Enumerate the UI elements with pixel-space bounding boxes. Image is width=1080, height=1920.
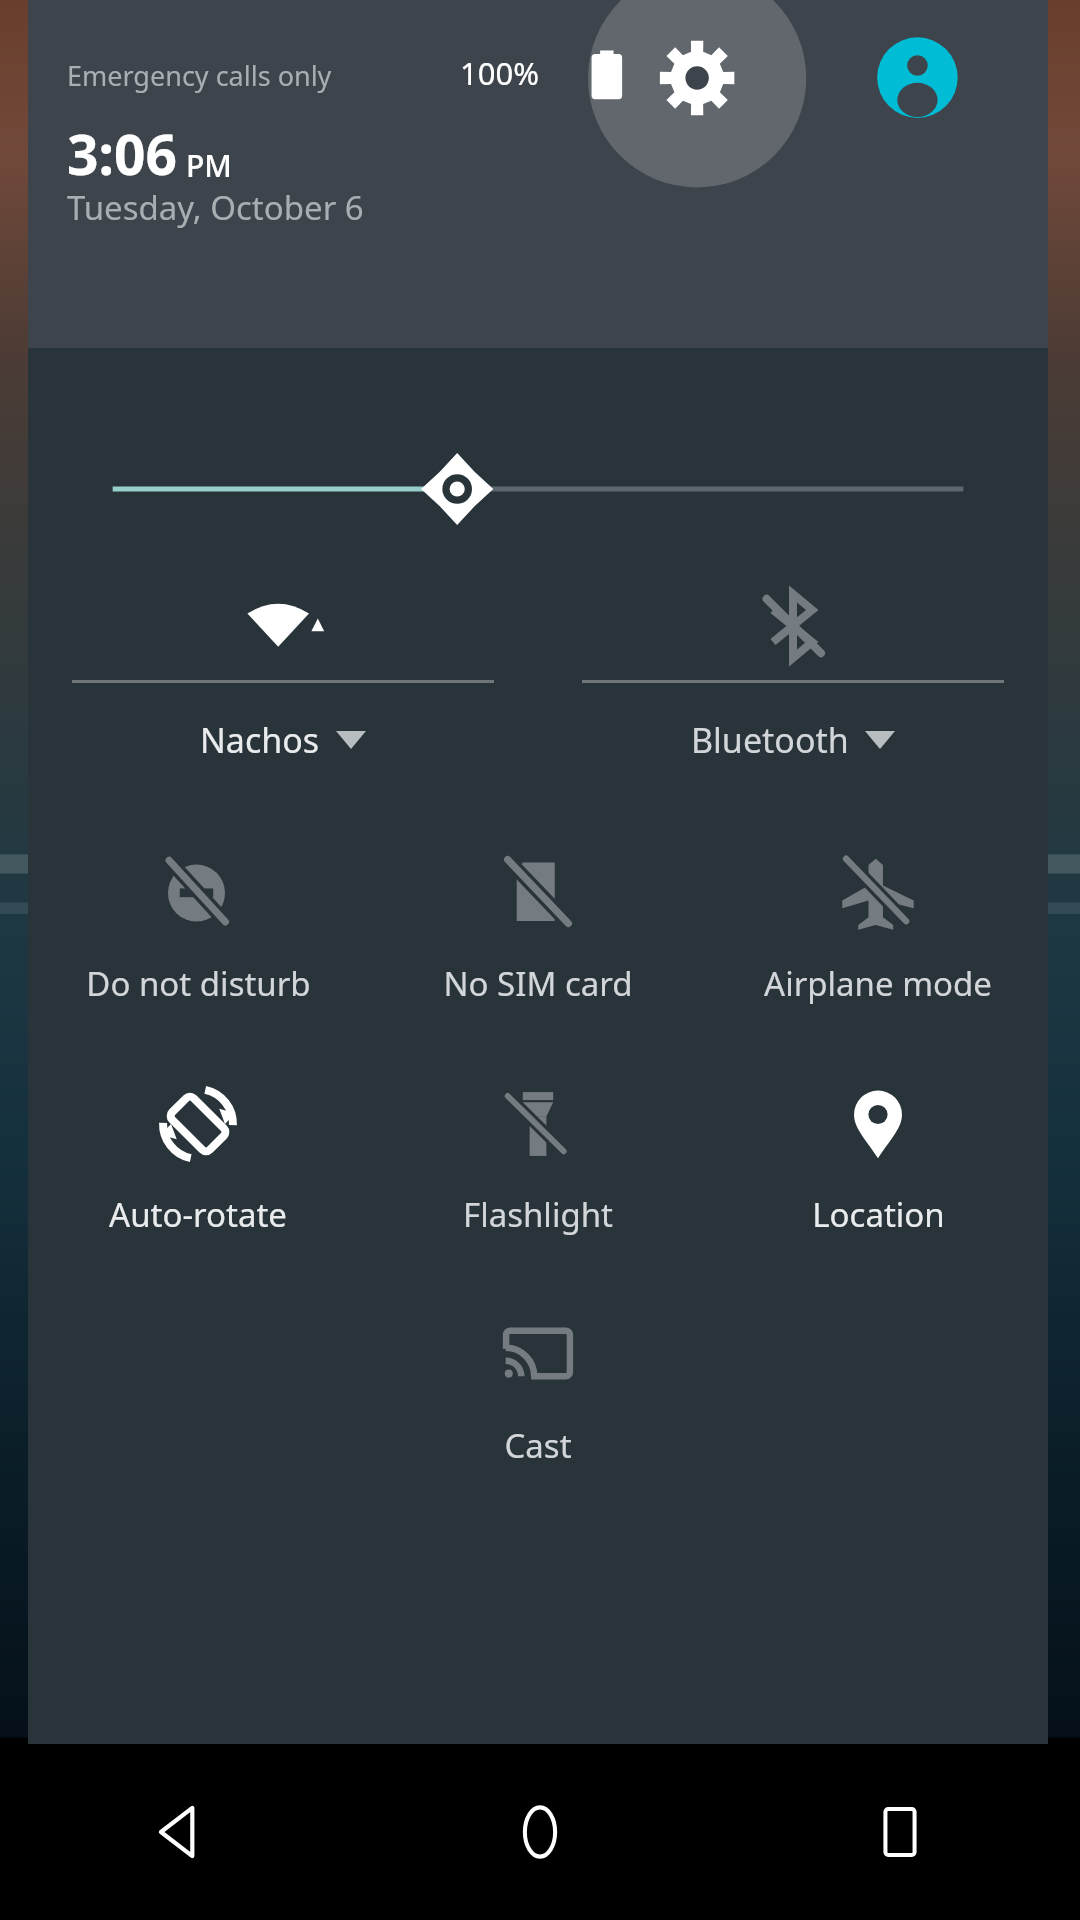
staticText: Bluetooth — [691, 717, 849, 763]
staticText: No SIM card — [443, 961, 633, 1006]
button[interactable]: Brightness — [28, 446, 1048, 532]
staticText: Emergency calls only — [67, 57, 332, 94]
button[interactable]: Auto-rotate — [28, 1072, 368, 1237]
staticText: PM — [186, 145, 232, 186]
staticText: 100% — [460, 52, 539, 94]
staticText: Cast — [504, 1423, 572, 1468]
button[interactable]: Settings — [661, 22, 741, 102]
button[interactable]: Nachos — [28, 572, 538, 763]
button[interactable]: Recents — [720, 1744, 1080, 1920]
staticText: Tuesday, October 6 — [67, 185, 364, 230]
staticText: Flashlight — [463, 1192, 613, 1237]
button[interactable]: Do not disturb — [28, 841, 368, 1006]
staticText: Auto-rotate — [109, 1192, 287, 1237]
button[interactable]: Back — [0, 1744, 360, 1920]
button[interactable]: Cast — [368, 1303, 708, 1468]
button[interactable]: Flashlight — [368, 1072, 708, 1237]
button[interactable]: Bluetooth — [538, 572, 1048, 763]
staticText: Do not disturb — [86, 961, 311, 1006]
button[interactable]: User profile — [879, 26, 951, 98]
button[interactable]: No SIM card — [368, 841, 708, 1006]
staticText: Nachos — [200, 717, 320, 763]
button[interactable]: Home — [360, 1744, 720, 1920]
staticText: Airplane mode — [764, 961, 992, 1006]
staticText: Location — [812, 1192, 945, 1237]
button[interactable]: Location — [708, 1072, 1048, 1237]
staticText: 3:06 — [67, 116, 177, 191]
button[interactable]: Airplane mode — [708, 841, 1048, 1006]
